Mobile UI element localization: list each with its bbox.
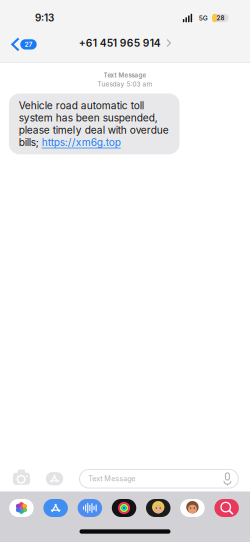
staticText: 28 [216, 14, 224, 22]
staticText: Text Message [103, 71, 146, 79]
staticText: 27 [24, 40, 32, 48]
staticText: 9:13 [35, 12, 54, 24]
button[interactable]: Images [214, 499, 239, 517]
staticText: Text Message [88, 474, 135, 483]
staticText: +61 451 965 914 [79, 37, 161, 49]
button[interactable]: Photos [9, 499, 34, 517]
button[interactable]: Stickers [180, 499, 205, 517]
button[interactable]: +61 451 965 914 [79, 33, 171, 53]
button[interactable]: App Store [43, 499, 68, 517]
button[interactable]: Back to Messages [0, 31, 37, 55]
button[interactable]: Camera [12, 470, 31, 487]
staticText: Vehicle road automatic toll system has b… [19, 99, 169, 148]
button[interactable]: Fitness [112, 499, 136, 517]
staticText: 5G [199, 14, 208, 22]
staticText: Tuesday 5:03 am [97, 80, 152, 88]
button[interactable]: Audio Message [78, 499, 102, 517]
button[interactable]: Apps [45, 470, 64, 487]
button[interactable]: Text Message field [79, 469, 238, 488]
button[interactable]: Memoji [146, 499, 170, 517]
